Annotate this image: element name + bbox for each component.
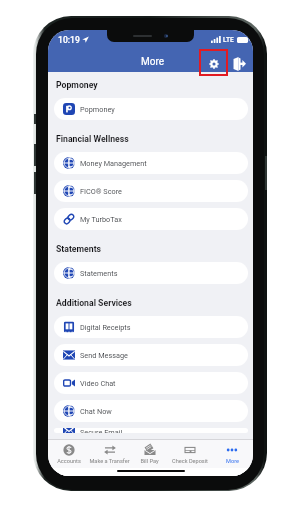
button[interactable]: Settings	[199, 50, 228, 77]
staticText: FICO® Score	[80, 187, 122, 196]
staticText: Bill Pay	[140, 458, 159, 465]
staticText: Money Management	[80, 159, 147, 168]
button[interactable]: Make a Transfer	[89, 440, 130, 468]
button[interactable]: Check Deposit	[169, 440, 211, 468]
button[interactable]: Digital Receipts	[54, 316, 248, 338]
staticText: Send Message	[80, 351, 128, 360]
staticText: LTE	[223, 36, 234, 44]
button[interactable]: FICO® Score	[54, 180, 248, 202]
button[interactable]: Bill Pay	[130, 440, 169, 468]
staticText: Digital Receipts	[80, 323, 131, 332]
button[interactable]: Popmoney	[54, 98, 248, 120]
staticText: 10:19	[58, 35, 80, 45]
button[interactable]: Accounts	[48, 440, 89, 468]
staticText: Video Chat	[80, 379, 116, 388]
button[interactable]: My TurboTax	[54, 208, 248, 230]
staticText: Secure Email	[80, 428, 123, 433]
staticText: Check Deposit	[172, 458, 208, 465]
button[interactable]: Log out	[226, 51, 252, 77]
button[interactable]: Video Chat	[54, 372, 248, 394]
staticText: Financial Wellness	[56, 134, 129, 144]
staticText: Popmoney	[80, 105, 115, 114]
button[interactable]: Statements	[54, 262, 248, 284]
staticText: My TurboTax	[80, 215, 122, 224]
staticText: More	[226, 458, 239, 465]
button[interactable]: Send Message	[54, 344, 248, 366]
staticText: Popmoney	[56, 80, 98, 90]
button[interactable]: Secure Email	[54, 428, 248, 433]
staticText: Chat Now	[80, 407, 112, 416]
staticText: Accounts	[57, 458, 81, 465]
staticText: Statements	[56, 244, 102, 254]
staticText: Statements	[80, 269, 118, 278]
staticText: More	[141, 56, 165, 68]
button[interactable]: More	[211, 440, 253, 468]
button[interactable]: Chat Now	[54, 400, 248, 422]
staticText: Make a Transfer	[89, 458, 130, 465]
staticText: Additional Services	[56, 298, 132, 308]
button[interactable]: Money Management	[54, 152, 248, 174]
